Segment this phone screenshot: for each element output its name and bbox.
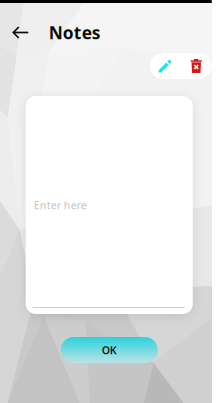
button[interactable]: Edit note — [150, 53, 181, 79]
button[interactable]: OK — [61, 337, 158, 363]
staticText: OK — [102, 343, 117, 357]
staticText: Notes — [49, 21, 101, 44]
button[interactable]: Back — [6, 17, 35, 48]
button[interactable]: Delete note — [181, 53, 212, 79]
staticText: Enter here — [34, 198, 87, 212]
